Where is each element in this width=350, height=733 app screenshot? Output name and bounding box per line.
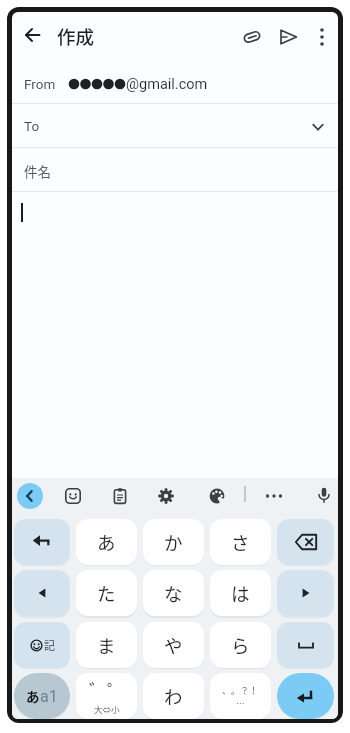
button[interactable] [277,673,334,719]
button[interactable] [152,482,180,510]
button[interactable] [106,482,134,510]
button[interactable]: From [12,65,338,103]
staticText: わ [164,683,183,710]
button[interactable]: ら [210,622,271,668]
staticText: な [164,580,183,607]
button[interactable]: は [210,570,271,616]
button[interactable] [277,519,334,565]
staticText: a1 [40,687,58,706]
staticText: ら [231,632,250,659]
button[interactable]: わ [143,673,204,719]
button[interactable]: 件名 [12,151,338,191]
button[interactable]: さ [210,519,271,565]
button[interactable] [260,482,288,510]
staticText: あ [97,529,116,556]
staticText: や [164,632,183,659]
button[interactable] [277,570,334,616]
staticText: さ [231,529,250,556]
button[interactable] [203,482,231,510]
staticText: To [24,118,40,134]
button[interactable]: 記 [14,622,70,668]
staticText: か [164,529,183,556]
button[interactable] [310,481,338,509]
button[interactable]: や [143,622,204,668]
button[interactable]: ま [76,622,137,668]
staticText: 作成 [57,23,95,50]
staticText: ゛゜ [89,677,125,703]
button[interactable]: あ [14,673,70,719]
staticText: From [24,76,56,92]
button[interactable]: あ [76,519,137,565]
staticText: 記 [44,637,55,653]
staticText: ま [97,632,116,659]
button[interactable] [272,21,303,52]
staticText: あ [26,686,40,706]
button[interactable]: か [143,519,204,565]
staticText: 件名 [24,161,51,181]
button[interactable] [17,19,49,51]
staticText: … [236,697,245,709]
button[interactable] [14,570,70,616]
button[interactable] [59,482,87,510]
staticText: 大⇔小 [94,703,120,715]
button[interactable]: た [76,570,137,616]
button[interactable]: ゛゜ [76,673,137,719]
button[interactable]: 、。？！ [210,673,271,719]
button[interactable] [14,519,70,565]
button[interactable]: な [143,570,204,616]
staticText: は [231,580,250,607]
button[interactable]: To [12,104,338,147]
button[interactable] [307,21,337,52]
button[interactable] [277,622,334,668]
staticText: た [97,580,116,607]
staticText: 、。？！ [222,684,259,697]
button[interactable] [236,21,267,52]
staticText: @gmail.com [126,76,208,93]
button[interactable] [17,483,43,509]
